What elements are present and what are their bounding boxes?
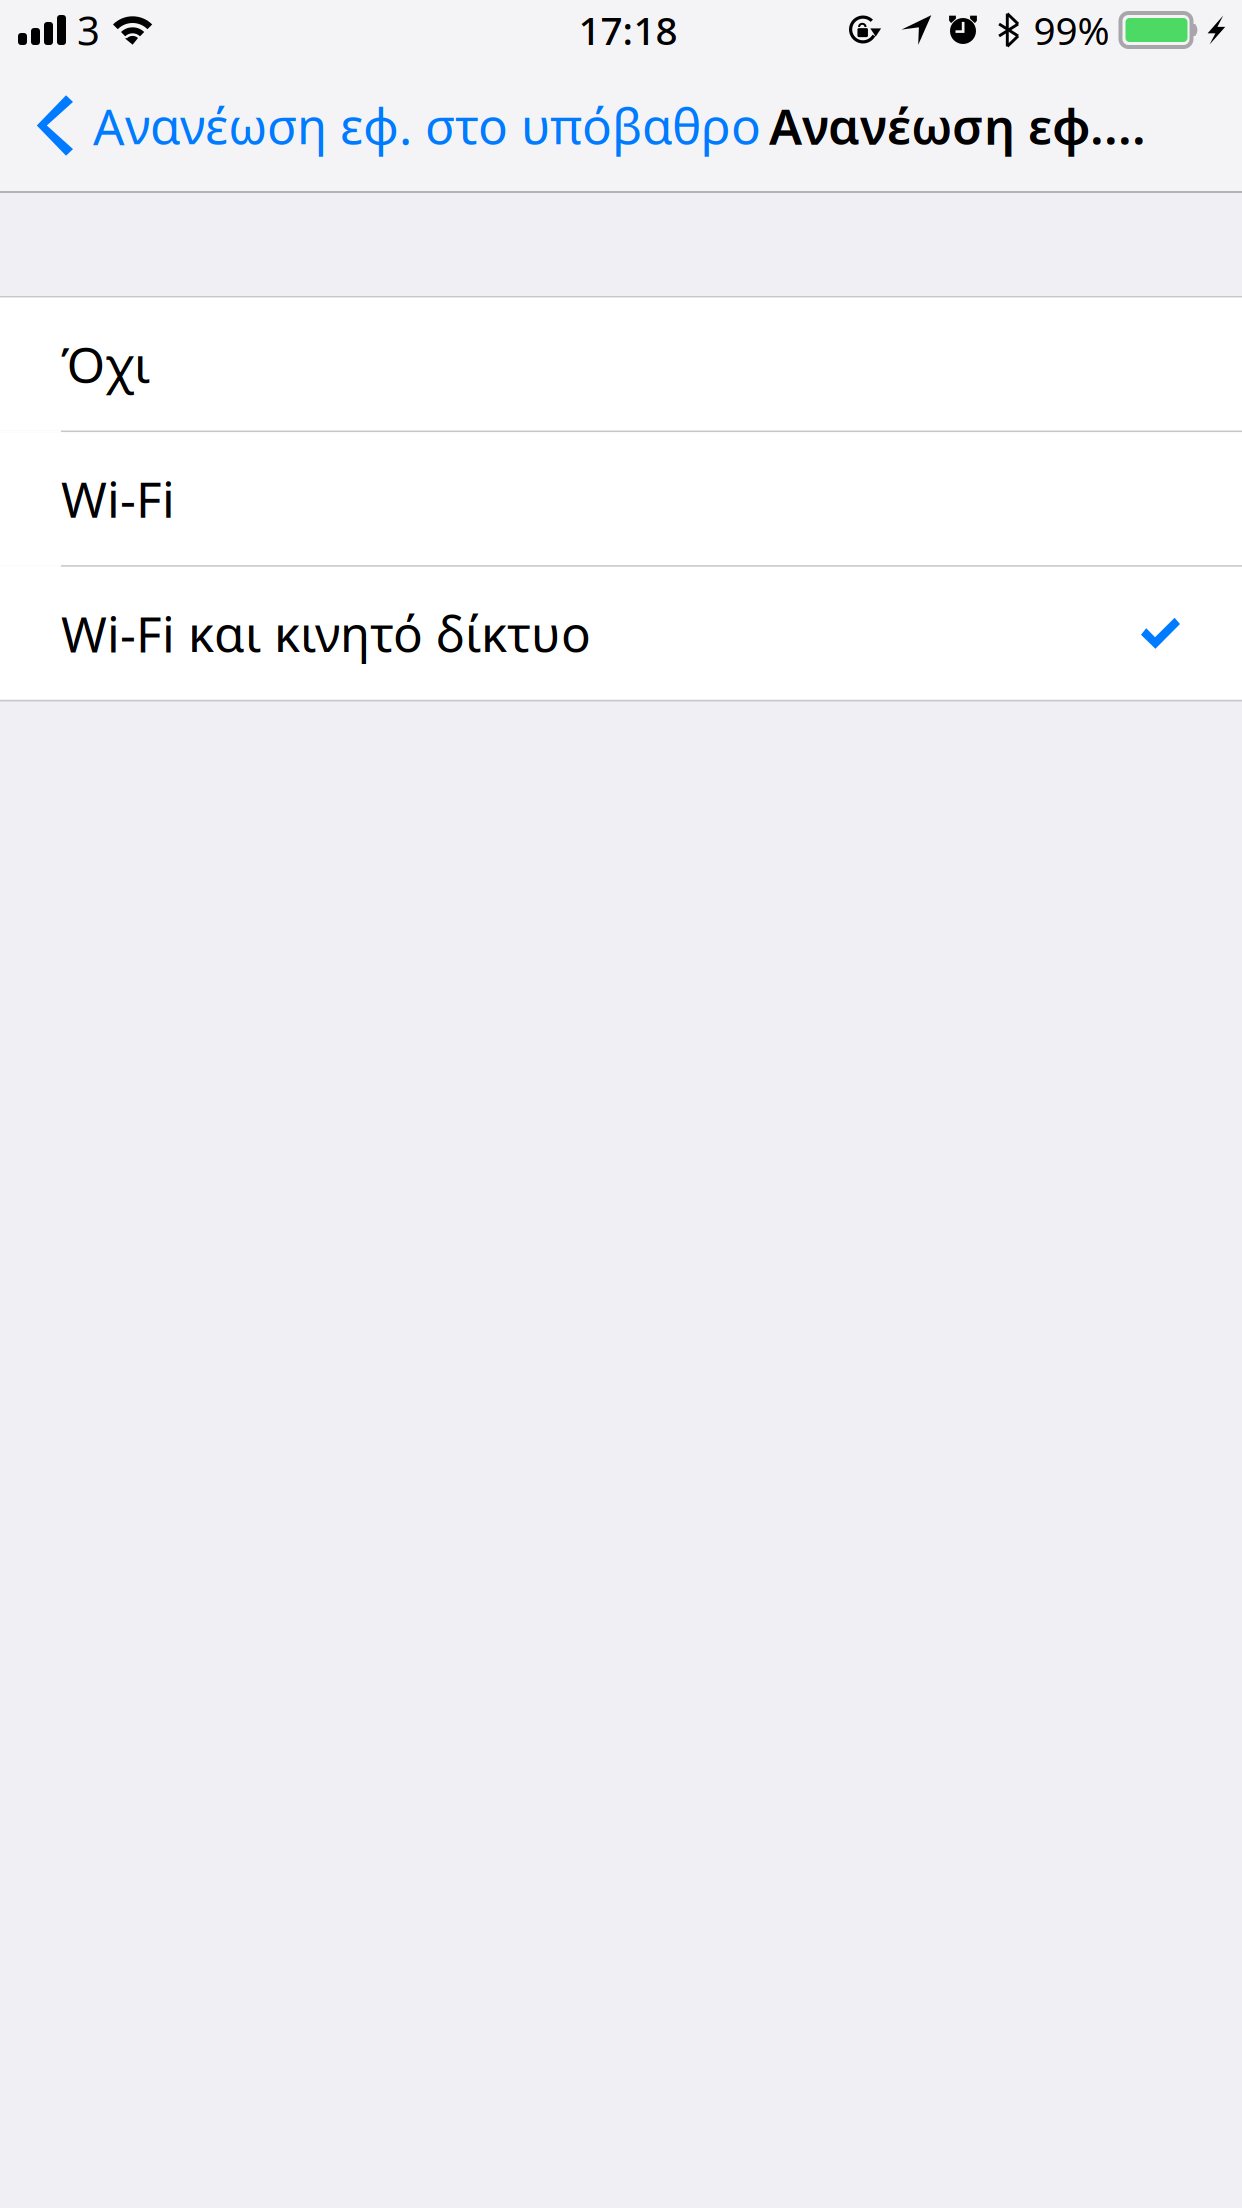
- staticText: 3: [77, 3, 100, 56]
- staticText: Wi-Fi: [61, 466, 175, 531]
- staticText: 17:18: [578, 4, 677, 56]
- staticText: Όχι: [61, 331, 150, 397]
- button[interactable]: Ανανέωση εφ. στο υπόβαθρο: [0, 60, 769, 191]
- staticText: 99%: [1033, 4, 1109, 56]
- staticText: Ανανέωση εφ....: [769, 93, 1146, 158]
- staticText: Wi-Fi και κινητό δίκτυο: [61, 600, 591, 666]
- button[interactable]: Όχι: [0, 298, 1242, 431]
- button[interactable]: Wi-Fi: [0, 432, 1242, 565]
- staticText: Ανανέωση εφ. στο υπόβαθρο: [93, 93, 761, 158]
- button[interactable]: Wi-Fi και κινητό δίκτυο: [0, 567, 1242, 700]
